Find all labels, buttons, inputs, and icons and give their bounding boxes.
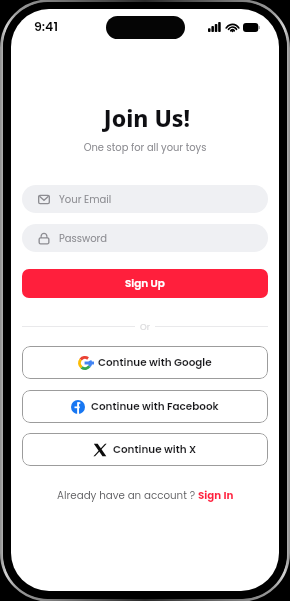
button[interactable]: Password [22,224,268,252]
staticText: Continue with X [113,442,197,457]
button[interactable]: Continue with Facebook [22,390,268,423]
button[interactable]: Your Email [22,185,268,213]
staticText: Continue with Facebook [91,399,219,414]
staticText: Password [59,231,108,245]
button[interactable]: Continue with Google [22,346,268,379]
staticText: Join Us! [13,102,279,133]
button[interactable]: Sign Up [22,269,268,298]
staticText: Your Email [59,192,112,206]
staticText: Already have an account ? [57,488,198,502]
staticText: One stop for all your toys [11,141,279,155]
staticText: Sign Up [125,276,165,291]
button[interactable]: Sign In [198,488,234,502]
staticText: Or [140,321,150,331]
button[interactable]: Continue with X [22,433,268,466]
staticText: Sign In [198,488,234,502]
staticText: Continue with Google [98,355,212,370]
staticText: 9:41 [34,18,58,35]
